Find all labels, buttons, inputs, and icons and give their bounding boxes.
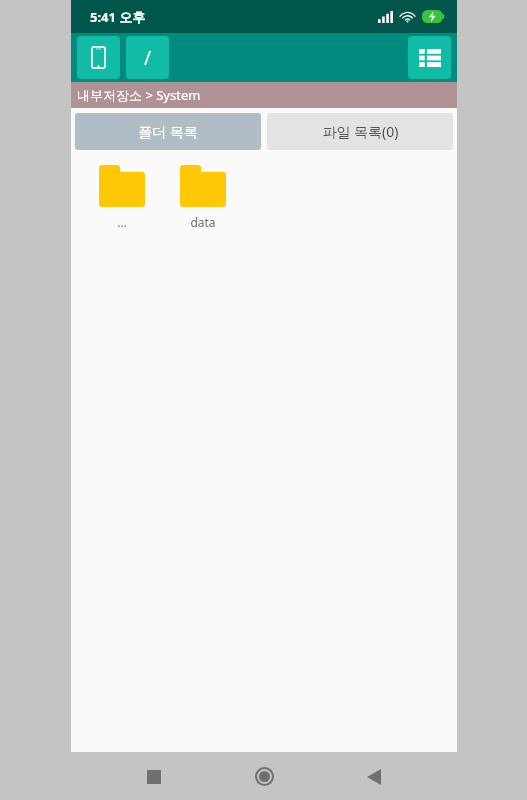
staticText: 폴더 목록 [138,122,198,141]
staticText: 내부저장소 > System [77,86,201,104]
staticText: 파일 목록(0) [322,122,399,141]
staticText: 5:41 오후 [90,8,146,26]
button[interactable]: 내부저장소 > System [71,82,457,108]
button[interactable]: data [164,165,241,230]
button[interactable]: Home [209,753,319,800]
button[interactable]: Root [126,36,169,79]
button[interactable]: Back [319,753,429,800]
button[interactable]: Recents [99,753,209,800]
button[interactable]: List view [408,36,451,79]
button[interactable]: Internal storage [77,36,120,79]
button[interactable]: 폴더 목록 [75,113,261,150]
staticText: ... [117,214,127,230]
staticText: data [190,214,216,230]
button[interactable]: ... [83,165,160,230]
button[interactable]: 파일 목록(0) [267,113,453,150]
staticText: / [144,45,152,71]
